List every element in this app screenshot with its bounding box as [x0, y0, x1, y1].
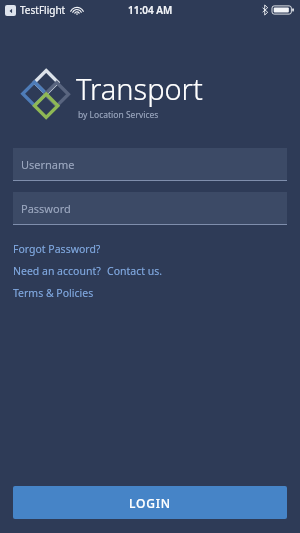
staticText: Transport: [76, 69, 203, 108]
staticText: TestFlight: [20, 3, 66, 17]
button[interactable]: Back to previous app: [5, 5, 16, 16]
button[interactable]: Username: [13, 148, 287, 181]
staticText: Terms & Policies: [13, 286, 94, 300]
button[interactable]: Forgot Password?: [13, 240, 101, 257]
staticText: LOGIN: [129, 495, 171, 511]
button[interactable]: Need an account?: [13, 262, 163, 279]
button[interactable]: LOGIN: [13, 486, 287, 519]
staticText: Password: [21, 201, 71, 216]
staticText: Need an account?: [13, 264, 101, 278]
staticText: Contact us.: [107, 264, 163, 278]
staticText: Forgot Password?: [13, 242, 101, 256]
staticText: by Location Services: [78, 109, 159, 121]
button[interactable]: Password: [13, 192, 287, 225]
staticText: Username: [21, 157, 75, 172]
button[interactable]: Terms & Policies: [13, 284, 94, 301]
staticText: 11:04 AM: [128, 3, 173, 17]
